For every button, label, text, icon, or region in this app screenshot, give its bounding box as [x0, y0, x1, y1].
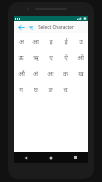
button[interactable]: अः — [43, 65, 58, 81]
button[interactable]: ङ — [43, 81, 58, 97]
button[interactable]: ऊ — [14, 49, 28, 65]
staticText: ख — [78, 69, 84, 78]
staticText: घ — [34, 85, 38, 94]
staticText: इ — [49, 37, 53, 46]
button[interactable]: च — [58, 81, 73, 97]
staticText: न — [29, 23, 33, 32]
staticText: ए — [49, 53, 53, 62]
staticText: ङ — [48, 85, 53, 94]
button[interactable]: अ — [14, 33, 28, 49]
staticText: ई — [64, 37, 68, 46]
button[interactable]: ऋ — [28, 49, 43, 65]
staticText: अं — [33, 69, 38, 78]
button[interactable]: क — [58, 65, 73, 81]
button[interactable]: ख — [73, 65, 88, 81]
staticText: औ — [18, 69, 25, 78]
button[interactable]: औ — [14, 65, 28, 81]
staticText: अः — [47, 69, 54, 78]
staticText: ऊ — [18, 53, 24, 62]
button[interactable]: अं — [28, 65, 43, 81]
button[interactable]: Recent apps — [63, 152, 88, 163]
button[interactable]: ई — [58, 33, 73, 49]
button[interactable]: घ — [28, 81, 43, 97]
staticText: ऐ — [64, 53, 68, 62]
button[interactable]: न — [27, 22, 35, 32]
button[interactable]: ए — [43, 49, 58, 65]
staticText: Select Character — [38, 24, 74, 30]
staticText: ऋ — [33, 53, 39, 62]
staticText: च — [63, 85, 68, 94]
button[interactable]: Home — [38, 152, 63, 163]
button[interactable]: Back — [14, 152, 38, 163]
button[interactable]: इ — [43, 33, 58, 49]
button[interactable]: आ — [28, 33, 43, 49]
button[interactable]: उ — [73, 33, 88, 49]
staticText: अ — [19, 37, 24, 46]
staticText: आ — [32, 37, 39, 46]
button[interactable]: ओ — [73, 49, 88, 65]
staticText: ग — [19, 85, 23, 94]
staticText: क — [63, 69, 68, 78]
button[interactable]: Navigate up — [16, 22, 26, 32]
button[interactable]: ऐ — [58, 49, 73, 65]
staticText: उ — [79, 37, 83, 46]
button[interactable]: ग — [14, 81, 28, 97]
staticText: ओ — [77, 53, 84, 62]
